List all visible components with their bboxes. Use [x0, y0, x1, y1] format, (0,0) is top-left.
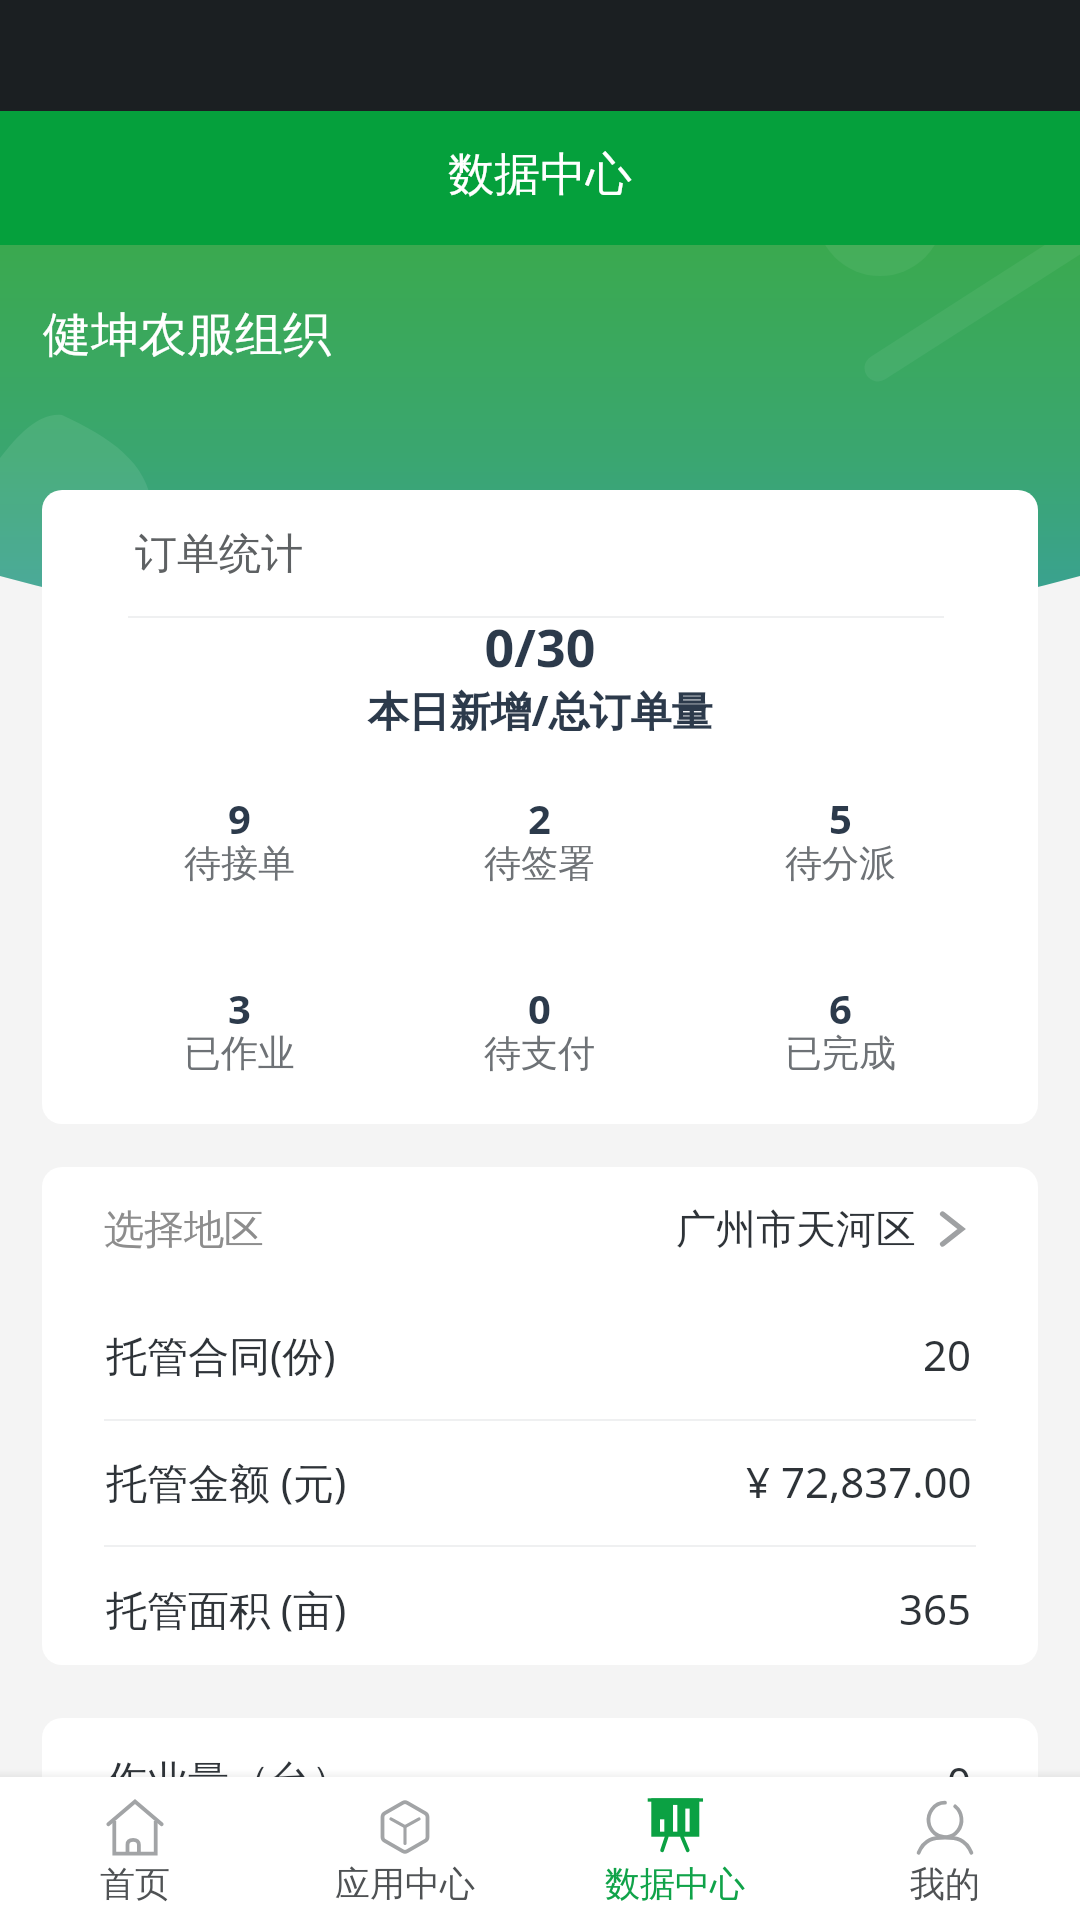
staticText: 已作业 — [184, 1030, 295, 1077]
button[interactable]: 数据中心 — [540, 1777, 810, 1920]
staticText: 托管面积 (亩) — [106, 1581, 347, 1637]
button[interactable]: 作业量（台） — [42, 1718, 1038, 1845]
button[interactable]: 托管合同(份) — [42, 1291, 1038, 1418]
staticText: 健坤农服组织 — [43, 305, 331, 365]
staticText: 首页 — [100, 1862, 170, 1906]
other: 应用中心 — [375, 1797, 435, 1857]
staticText: 2 — [528, 791, 551, 845]
button[interactable]: 托管面积 (亩) — [42, 1545, 1038, 1665]
staticText: 选择地区 — [104, 1204, 264, 1254]
button[interactable]: 我的 — [810, 1777, 1080, 1920]
staticText: 365 — [899, 1580, 972, 1637]
button[interactable]: 0 — [389, 981, 690, 1082]
button[interactable]: 选择地区 — [42, 1167, 1038, 1291]
button[interactable]: 首页 — [0, 1777, 270, 1920]
staticText: 待接单 — [184, 840, 295, 887]
staticText: 20 — [923, 1326, 972, 1383]
other: 数据中心 — [645, 1797, 705, 1857]
button[interactable]: 托管金额 (元) — [42, 1418, 1038, 1545]
staticText: ¥ 72,837.00 — [746, 1453, 972, 1510]
staticText: 托管合同(份) — [106, 1327, 336, 1383]
staticText: 待分派 — [785, 840, 896, 887]
button[interactable]: 5 — [690, 791, 991, 892]
staticText: 5 — [829, 791, 852, 845]
staticText: 待支付 — [484, 1030, 595, 1077]
staticText: 托管金额 (元) — [106, 1454, 347, 1510]
staticText: 广州市天河区 — [676, 1204, 916, 1254]
staticText: 应用中心 — [335, 1862, 475, 1906]
staticText: 待签署 — [484, 840, 595, 887]
staticText: 本日新增/总订单量 — [42, 682, 1038, 738]
staticText: 数据中心 — [448, 146, 632, 204]
button[interactable]: 6 — [690, 981, 991, 1082]
staticText: 订单统计 — [135, 528, 303, 581]
staticText: 作业量（台） — [106, 1756, 352, 1808]
staticText: 9 — [228, 791, 251, 845]
button[interactable]: 应用中心 — [270, 1777, 540, 1920]
button[interactable]: 9 — [89, 791, 389, 892]
staticText: 0/30 — [42, 611, 1038, 682]
staticText: 0 — [947, 1753, 972, 1810]
staticText: 3 — [228, 981, 251, 1035]
staticText: 我的 — [910, 1862, 980, 1906]
button[interactable]: 2 — [389, 791, 690, 892]
staticText: 数据中心 — [605, 1862, 745, 1906]
button[interactable]: 3 — [89, 981, 389, 1082]
staticText: 0 — [528, 981, 551, 1035]
other: 首页 — [105, 1797, 165, 1857]
staticText: 已完成 — [785, 1030, 896, 1077]
other: 我的 — [915, 1797, 975, 1857]
staticText: 6 — [829, 981, 852, 1035]
